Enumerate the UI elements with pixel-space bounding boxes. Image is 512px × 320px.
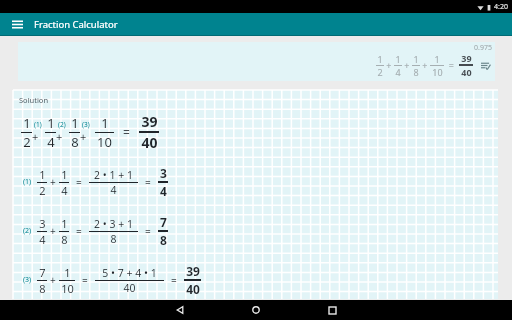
- staticText: Fraction Calculator: [34, 18, 118, 31]
- staticText: 2 • 1 + 1: [94, 168, 133, 182]
- staticText: =: [76, 175, 82, 189]
- staticText: 1: [377, 53, 383, 65]
- staticText: 40: [141, 133, 158, 152]
- staticText: 4: [61, 183, 68, 198]
- staticText: 1: [23, 114, 31, 132]
- staticText: 2 • 3 + 1: [94, 217, 133, 231]
- staticText: (1): [23, 177, 32, 187]
- staticText: 7: [39, 265, 46, 280]
- staticText: +: [32, 129, 39, 144]
- staticText: =: [123, 124, 130, 140]
- staticText: 8: [413, 66, 419, 78]
- staticText: 8: [61, 232, 68, 247]
- staticText: 8: [39, 281, 46, 296]
- staticText: Solution: [19, 95, 49, 105]
- staticText: 40: [123, 281, 136, 295]
- staticText: =: [145, 224, 151, 238]
- button[interactable]: Result display options: [479, 59, 491, 71]
- staticText: =: [76, 224, 82, 238]
- staticText: 4: [47, 133, 55, 151]
- staticText: 1: [61, 167, 68, 182]
- staticText: =: [444, 59, 459, 71]
- staticText: 1: [64, 265, 71, 280]
- staticText: =: [145, 175, 151, 189]
- staticText: +: [80, 129, 87, 144]
- staticText: 4:20: [494, 2, 508, 12]
- staticText: 1: [101, 114, 109, 132]
- staticText: 4: [110, 183, 117, 197]
- staticText: 2: [39, 183, 46, 198]
- staticText: +: [50, 224, 56, 238]
- staticText: +: [50, 175, 56, 189]
- staticText: 4: [395, 66, 401, 78]
- staticText: (2): [23, 226, 32, 236]
- staticText: +: [420, 59, 430, 71]
- staticText: (1): [34, 120, 42, 129]
- staticText: 39: [461, 52, 472, 64]
- staticText: 40: [186, 281, 200, 297]
- staticText: 5 • 7 + 4 • 1: [102, 266, 157, 280]
- staticText: 4: [160, 183, 167, 199]
- button[interactable]: Home: [241, 300, 271, 320]
- staticText: 1: [61, 216, 68, 231]
- staticText: 7: [160, 214, 167, 230]
- staticText: 8: [110, 232, 117, 246]
- button[interactable]: Back: [165, 300, 195, 320]
- button[interactable]: 0.975: [18, 42, 495, 81]
- staticText: +: [384, 59, 394, 71]
- staticText: +: [56, 129, 63, 144]
- staticText: 1: [71, 114, 79, 132]
- staticText: 1: [434, 53, 440, 65]
- staticText: 2: [23, 133, 31, 151]
- staticText: 10: [97, 133, 112, 151]
- staticText: 3: [39, 216, 46, 231]
- button[interactable]: Recent apps: [317, 300, 347, 320]
- button[interactable]: Solution: [13, 90, 498, 299]
- staticText: =: [82, 273, 88, 287]
- staticText: 2: [377, 66, 383, 78]
- staticText: 8: [71, 133, 79, 151]
- staticText: 39: [186, 263, 200, 279]
- staticText: 10: [432, 66, 443, 78]
- staticText: +: [50, 273, 56, 287]
- staticText: 1: [395, 53, 401, 65]
- staticText: 1: [413, 53, 419, 65]
- staticText: +: [402, 59, 412, 71]
- staticText: 4: [39, 232, 46, 247]
- staticText: =: [171, 273, 177, 287]
- staticText: 10: [61, 281, 74, 296]
- staticText: (2): [58, 120, 66, 129]
- staticText: 8: [160, 232, 167, 248]
- button[interactable]: Open navigation menu: [7, 14, 27, 34]
- staticText: 1: [47, 114, 55, 132]
- staticText: (3): [82, 120, 90, 129]
- staticText: 39: [141, 112, 158, 131]
- staticText: 40: [461, 66, 472, 78]
- staticText: 1: [39, 167, 46, 182]
- staticText: (3): [23, 275, 32, 285]
- staticText: 0.975: [474, 43, 492, 53]
- staticText: 3: [160, 165, 167, 181]
